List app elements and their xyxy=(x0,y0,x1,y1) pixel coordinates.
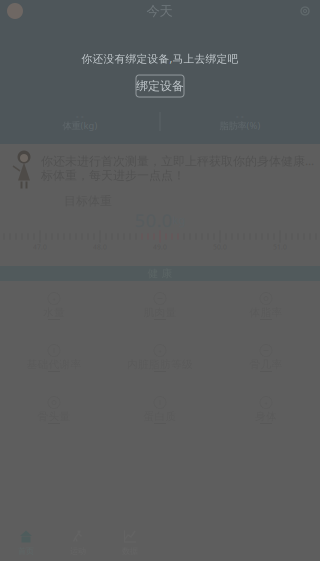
staticText: 你还未进行首次测量，立即上秤获取你的身体健康建议吧？设置你的目 xyxy=(41,152,319,169)
button[interactable]: 绑定设备 xyxy=(136,75,184,97)
staticText: 你还没有绑定设备,马上去绑定吧 xyxy=(81,51,238,66)
button[interactable]: Profile xyxy=(0,3,23,19)
button[interactable]: Settings xyxy=(296,2,320,20)
button[interactable]: 首页 xyxy=(0,527,52,559)
staticText: 今天 xyxy=(146,3,172,19)
staticText: 标体重，每天进步一点点！ xyxy=(41,168,185,183)
staticText: 绑定设备 xyxy=(136,78,184,93)
staticText: 脂肪率(%) xyxy=(219,119,260,132)
staticText: 体重(kg) xyxy=(62,119,97,132)
